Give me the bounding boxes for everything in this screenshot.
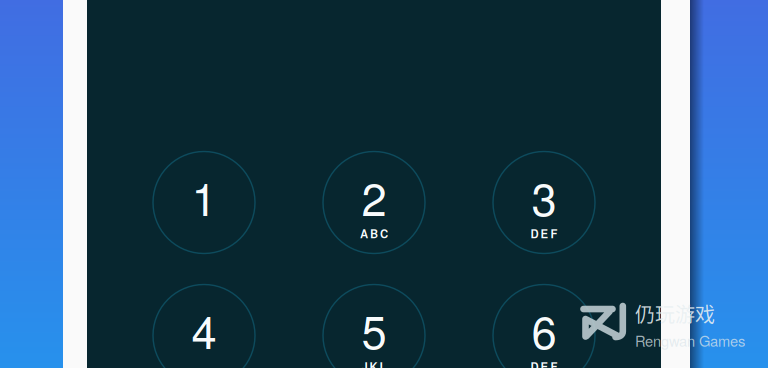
staticText: Rengwan Games — [635, 330, 745, 351]
staticText: 3 — [531, 164, 556, 229]
button[interactable]: 1 — [153, 151, 255, 253]
button[interactable]: 5 — [323, 284, 425, 368]
button[interactable]: 4 — [153, 284, 255, 368]
button[interactable]: 3 — [493, 151, 595, 253]
staticText: D E F — [530, 358, 557, 368]
button[interactable]: 6 — [493, 284, 595, 368]
staticText: 5 — [361, 297, 386, 362]
button[interactable]: 2 — [323, 151, 425, 253]
staticText: 2 — [361, 164, 386, 229]
staticText: D E F — [530, 225, 557, 242]
staticText: 仍玩游戏 — [635, 299, 715, 328]
staticText: A B C — [360, 225, 388, 242]
staticText: 1 — [191, 164, 216, 229]
staticText: 6 — [531, 297, 556, 362]
staticText: J K L — [361, 358, 386, 368]
staticText: 4 — [191, 297, 216, 362]
